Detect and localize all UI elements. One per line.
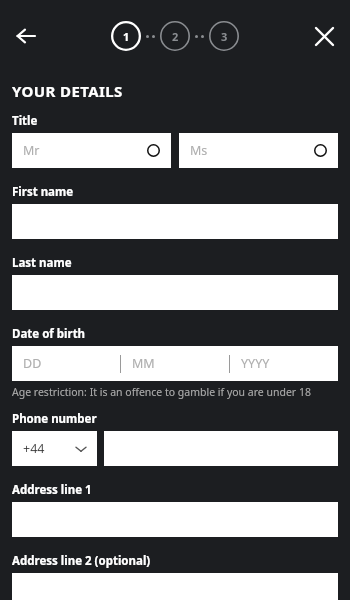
button[interactable]: Mr (12, 133, 171, 168)
staticText: Address line 1 (12, 482, 92, 498)
button[interactable]: Close (304, 16, 344, 56)
button[interactable]: Step 2 (160, 21, 190, 51)
button[interactable]: DD (12, 346, 338, 381)
staticText: First name (12, 184, 74, 200)
button[interactable]: Step 3 (209, 21, 239, 51)
button[interactable]: +44 (12, 431, 97, 466)
staticText: +44 (23, 440, 76, 457)
staticText: 3 (221, 29, 228, 44)
button[interactable]: Back (6, 16, 46, 56)
staticText: DD (23, 355, 42, 372)
staticText: 1 (123, 29, 130, 44)
staticText: Address line 2 (optional) (12, 553, 151, 569)
staticText: YYYY (241, 355, 270, 372)
staticText: MM (132, 355, 155, 372)
staticText: Title (12, 113, 38, 129)
staticText: Date of birth (12, 326, 86, 342)
staticText: Last name (12, 255, 72, 271)
button[interactable]: Step 1 (111, 21, 141, 51)
staticText: 2 (172, 29, 179, 44)
staticText: Mr (23, 142, 147, 159)
staticText: Age restriction: It is an offence to gam… (12, 385, 311, 399)
staticText: Ms (190, 142, 314, 159)
staticText: YOUR DETAILS (12, 81, 123, 101)
button[interactable]: Ms (179, 133, 338, 168)
staticText: Phone number (12, 411, 97, 427)
